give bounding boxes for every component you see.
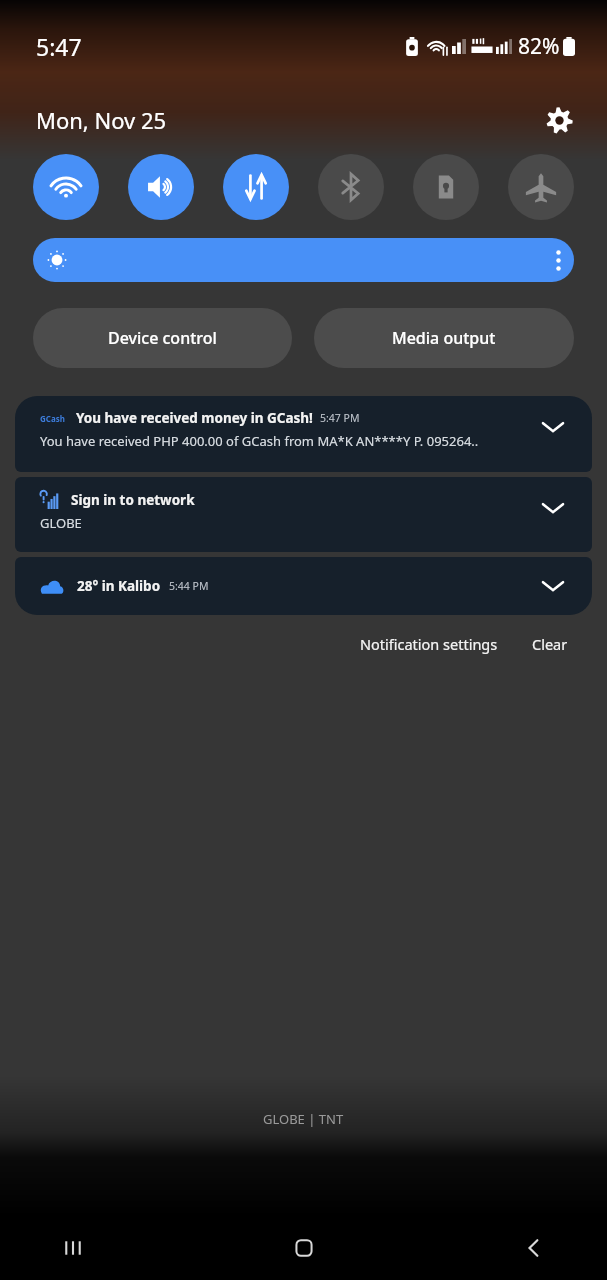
staticText: Mon, Nov 25 — [36, 105, 167, 135]
button[interactable]: Back — [507, 1221, 561, 1275]
button[interactable]: Brightness — [33, 238, 574, 282]
button[interactable]: Expand — [540, 495, 566, 521]
staticText: 5:47 PM — [320, 411, 360, 425]
button[interactable]: Home — [277, 1221, 331, 1275]
staticText: Clear — [532, 634, 568, 654]
button[interactable]: Device control — [33, 308, 292, 368]
button[interactable]: 28° in Kalibo — [15, 557, 592, 615]
button[interactable]: Mobile data — [223, 154, 289, 220]
button[interactable]: Recents — [46, 1221, 100, 1275]
staticText: GLOBE | TNT — [263, 1110, 344, 1128]
staticText: Media output — [392, 327, 496, 349]
button[interactable]: SIM lock — [413, 154, 479, 220]
staticText: You have received PHP 400.00 of GCash fr… — [40, 432, 479, 450]
button[interactable]: Expand — [540, 414, 566, 440]
staticText: 5:44 PM — [169, 579, 209, 593]
button[interactable]: Sign in to network — [15, 477, 592, 552]
button[interactable]: Bluetooth — [318, 154, 384, 220]
button[interactable]: GCash — [15, 396, 592, 472]
staticText: 28° in Kalibo — [77, 577, 161, 595]
button[interactable]: Settings — [539, 100, 579, 140]
staticText: You have received money in GCash! — [76, 409, 313, 427]
button[interactable]: Airplane mode — [508, 154, 574, 220]
staticText: Device control — [108, 327, 217, 349]
button[interactable]: Notification settings — [354, 628, 504, 660]
button[interactable]: Media output — [314, 308, 574, 368]
button[interactable]: Sound — [128, 154, 194, 220]
staticText: 82% — [518, 32, 560, 61]
staticText: 5:47 — [36, 31, 82, 62]
staticText: Sign in to network — [71, 491, 195, 509]
staticText: GCash — [40, 413, 65, 424]
staticText: GLOBE — [40, 514, 82, 532]
button[interactable]: Expand — [540, 573, 566, 599]
button[interactable]: Wi-Fi — [33, 154, 99, 220]
button[interactable]: Clear — [526, 628, 574, 660]
staticText: Notification settings — [360, 634, 498, 654]
